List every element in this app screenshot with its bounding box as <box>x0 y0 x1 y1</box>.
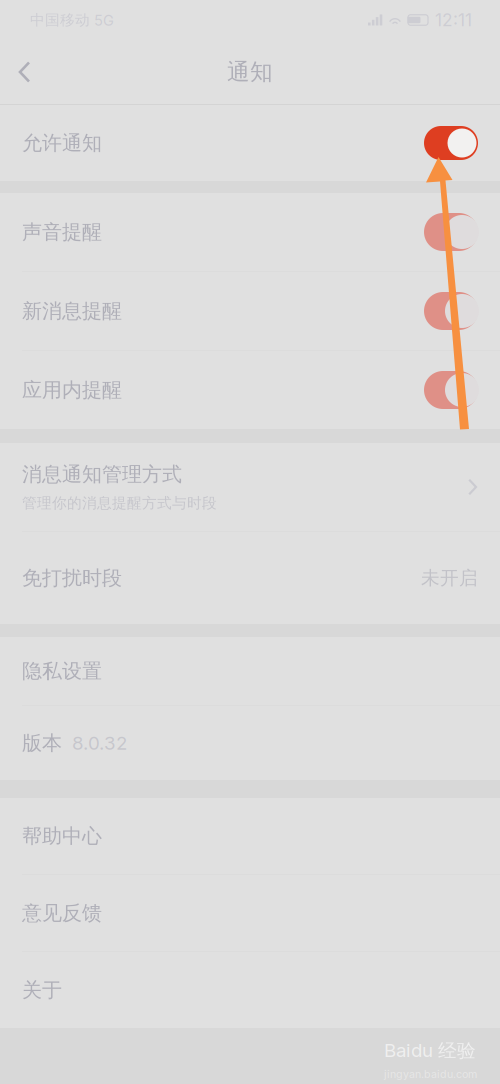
staticText: 隐私设置 <box>22 658 102 684</box>
staticText: 8.0.32 <box>72 732 127 754</box>
button[interactable]: 应用内提醒 <box>0 351 500 429</box>
staticText: 管理你的消息提醒方式与时段 <box>22 494 217 512</box>
staticText: 未开启 <box>421 566 478 590</box>
staticText: 新消息提醒 <box>22 298 122 324</box>
staticText: 免打扰时段 <box>22 565 122 591</box>
button[interactable]: 免打扰时段 <box>0 532 500 624</box>
staticText: 允许通知 <box>22 130 102 156</box>
button[interactable]: 帮助中心 <box>0 798 500 874</box>
staticText: 应用内提醒 <box>22 377 122 403</box>
staticText: 声音提醒 <box>22 219 102 245</box>
staticText: Baidu 经验 <box>384 1039 476 1063</box>
staticText: 关于 <box>22 977 62 1003</box>
staticText: jingyan.baidu.com <box>384 1068 477 1080</box>
staticText: 版本 <box>22 730 62 756</box>
staticText: 帮助中心 <box>22 823 102 849</box>
button[interactable]: 新消息提醒 <box>0 272 500 350</box>
staticText: 通知 <box>227 58 273 86</box>
button[interactable]: Back <box>0 43 45 101</box>
button[interactable]: 声音提醒 <box>0 193 500 271</box>
button[interactable]: 版本 <box>0 706 500 780</box>
button[interactable]: 消息通知管理方式 <box>0 443 500 531</box>
staticText: 意见反馈 <box>22 900 102 926</box>
button[interactable]: 隐私设置 <box>0 637 500 705</box>
button[interactable]: 意见反馈 <box>0 875 500 951</box>
staticText: 中国移动 5G <box>30 11 114 29</box>
button[interactable]: 允许通知 <box>0 105 500 181</box>
staticText: 消息通知管理方式 <box>22 462 182 487</box>
staticText: 12:11 <box>435 9 472 30</box>
